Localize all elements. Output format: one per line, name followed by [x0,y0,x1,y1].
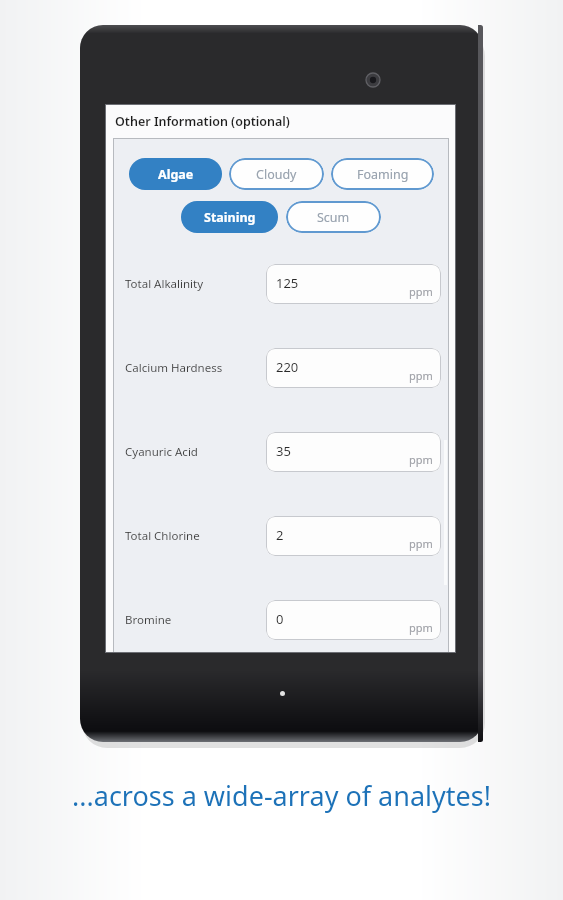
staticText: 0 [276,610,284,628]
staticText: Scum [317,209,350,226]
button[interactable]: 0 [266,600,441,640]
button[interactable]: 220 [266,348,441,388]
staticText: ppm [409,620,433,635]
staticText: 2 [276,526,284,544]
staticText: ppm [409,452,433,467]
staticText: 35 [276,442,291,460]
staticText: ppm [409,536,433,551]
staticText: Bromine [125,612,172,628]
staticText: 220 [276,358,299,376]
staticText: Calcium Hardness [125,360,223,376]
button[interactable]: Foaming [331,158,434,190]
staticText: Cloudy [256,166,297,183]
button[interactable]: 35 [266,432,441,472]
staticText: Foaming [357,166,409,183]
button[interactable]: Cloudy [229,158,324,190]
staticText: Total Alkalinity [125,276,204,292]
button[interactable]: Algae [129,158,222,190]
staticText: ppm [409,368,433,383]
button[interactable]: Staining [181,201,278,233]
staticText: ...across a wide-array of analytes! [0,777,563,814]
staticText: Total Chlorine [125,528,200,544]
staticText: Algae [158,166,194,183]
staticText: Staining [204,209,256,226]
button[interactable]: 125 [266,264,441,304]
staticText: 125 [276,274,299,292]
button[interactable]: Scum [286,201,381,233]
staticText: Cyanuric Acid [125,444,198,460]
button[interactable]: 2 [266,516,441,556]
staticText: ppm [409,284,433,299]
staticText: Other Information (optional) [115,113,290,130]
